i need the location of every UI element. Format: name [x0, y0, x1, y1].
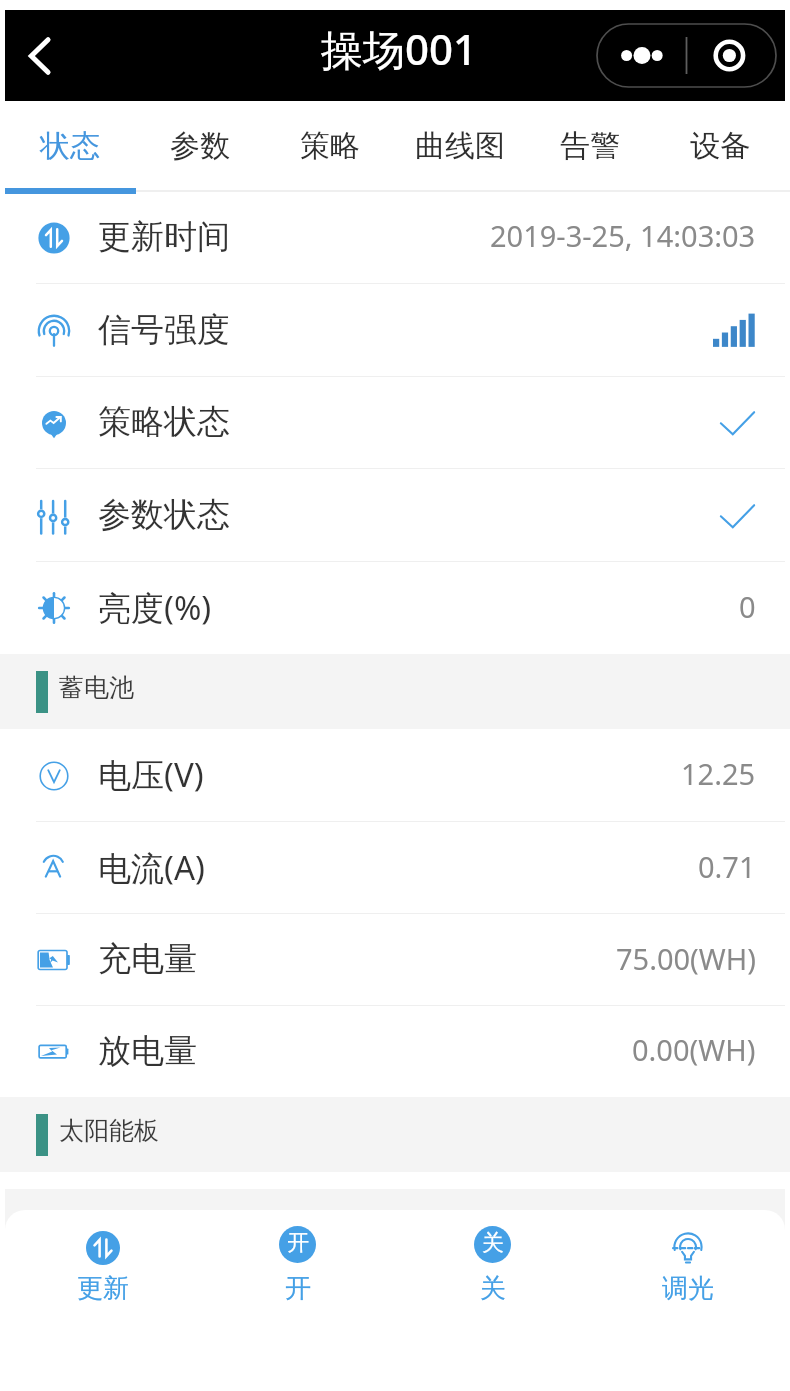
staticText: 充电量 — [98, 938, 197, 980]
staticText: 设备 — [690, 127, 750, 165]
staticText: 12.25 — [681, 754, 756, 793]
staticText: 策略状态 — [98, 401, 230, 443]
staticText: 电压(V) — [98, 752, 204, 797]
staticText: 2019-3-25, 14:03:03 — [490, 216, 756, 255]
staticText: 关 — [482, 1229, 504, 1257]
staticText: 太阳能板 — [59, 1115, 159, 1146]
staticText: 调光 — [662, 1272, 714, 1305]
staticText: 告警 — [560, 127, 620, 165]
staticText: 策略 — [300, 127, 360, 165]
staticText: 0.71 — [698, 847, 756, 886]
button[interactable]: 放电量 — [0, 1006, 790, 1097]
button[interactable]: 充电量 — [0, 914, 790, 1006]
button[interactable]: 策略状态 — [0, 377, 790, 469]
staticText: 蓄电池 — [59, 672, 134, 703]
staticText: 更新 — [77, 1272, 129, 1305]
staticText: 操场001 — [321, 20, 478, 77]
button[interactable]: 更新 — [5, 1210, 200, 1391]
staticText: 电流(A) — [98, 845, 205, 890]
button[interactable]: Back — [5, 10, 77, 101]
button[interactable]: 开 — [200, 1210, 395, 1391]
button[interactable]: 设备 — [655, 101, 785, 191]
staticText: 信号强度 — [98, 309, 230, 351]
staticText: 参数状态 — [98, 494, 230, 536]
button[interactable]: 曲线图 — [395, 101, 525, 191]
button[interactable]: 电压(V) — [0, 729, 790, 822]
button[interactable]: 更新时间 — [0, 191, 790, 284]
staticText: 开 — [287, 1229, 309, 1257]
staticText: 75.00(WH) — [616, 939, 756, 978]
staticText: 开 — [285, 1272, 311, 1305]
button[interactable]: 策略 — [265, 101, 395, 191]
button[interactable]: 告警 — [525, 101, 655, 191]
staticText: 关 — [480, 1272, 506, 1305]
staticText: 参数 — [170, 127, 230, 165]
button[interactable]: 信号强度 — [0, 284, 790, 377]
button[interactable]: 状态 — [5, 101, 135, 191]
staticText: 0.00(WH) — [632, 1030, 756, 1069]
button[interactable]: 参数状态 — [0, 469, 790, 562]
button[interactable]: More options — [596, 23, 777, 88]
button[interactable]: 关 — [395, 1210, 590, 1391]
staticText: 0 — [739, 587, 756, 626]
button[interactable]: 参数 — [135, 101, 265, 191]
button[interactable]: 电流(A) — [0, 822, 790, 914]
staticText: 更新时间 — [98, 216, 230, 258]
staticText: 亮度(%) — [98, 585, 212, 630]
button[interactable]: 亮度(%) — [0, 562, 790, 654]
staticText: 放电量 — [98, 1030, 197, 1072]
staticText: 状态 — [40, 127, 100, 165]
staticText: 曲线图 — [415, 127, 505, 165]
button[interactable]: 调光 — [590, 1210, 785, 1391]
